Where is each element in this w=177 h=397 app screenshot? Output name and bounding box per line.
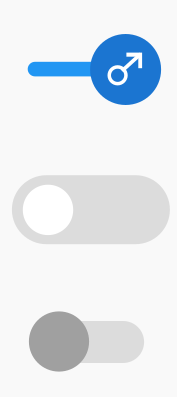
button[interactable]: Switch, off bbox=[0, 0, 177, 397]
button[interactable]: Male, selected bbox=[0, 0, 177, 397]
button[interactable]: Switch bbox=[0, 0, 177, 397]
